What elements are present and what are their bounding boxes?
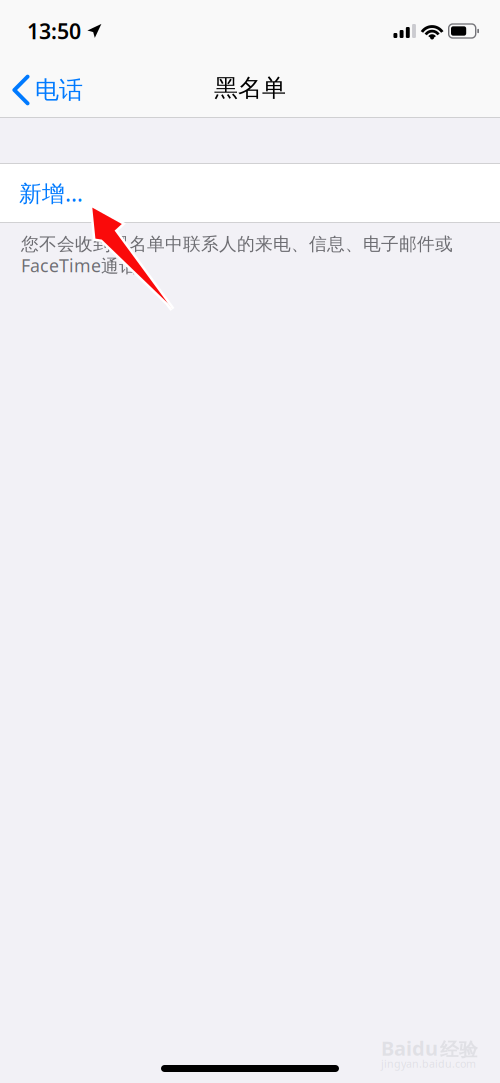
staticText: Baidu <box>381 1035 438 1061</box>
staticText: 您不会收到黑名单中联系人的来电、信息、电子邮件或FaceTime通话。 <box>21 233 453 278</box>
staticText: 经验 <box>440 1038 478 1061</box>
button[interactable]: 电话 <box>0 62 93 118</box>
staticText: 13:50 <box>27 17 81 45</box>
staticText: 黑名单 <box>214 73 286 103</box>
staticText: jingyan.baidu.com <box>381 1056 476 1071</box>
staticText: 新增… <box>19 178 83 208</box>
button[interactable]: 新增… <box>0 163 500 223</box>
staticText: 电话 <box>35 75 83 105</box>
